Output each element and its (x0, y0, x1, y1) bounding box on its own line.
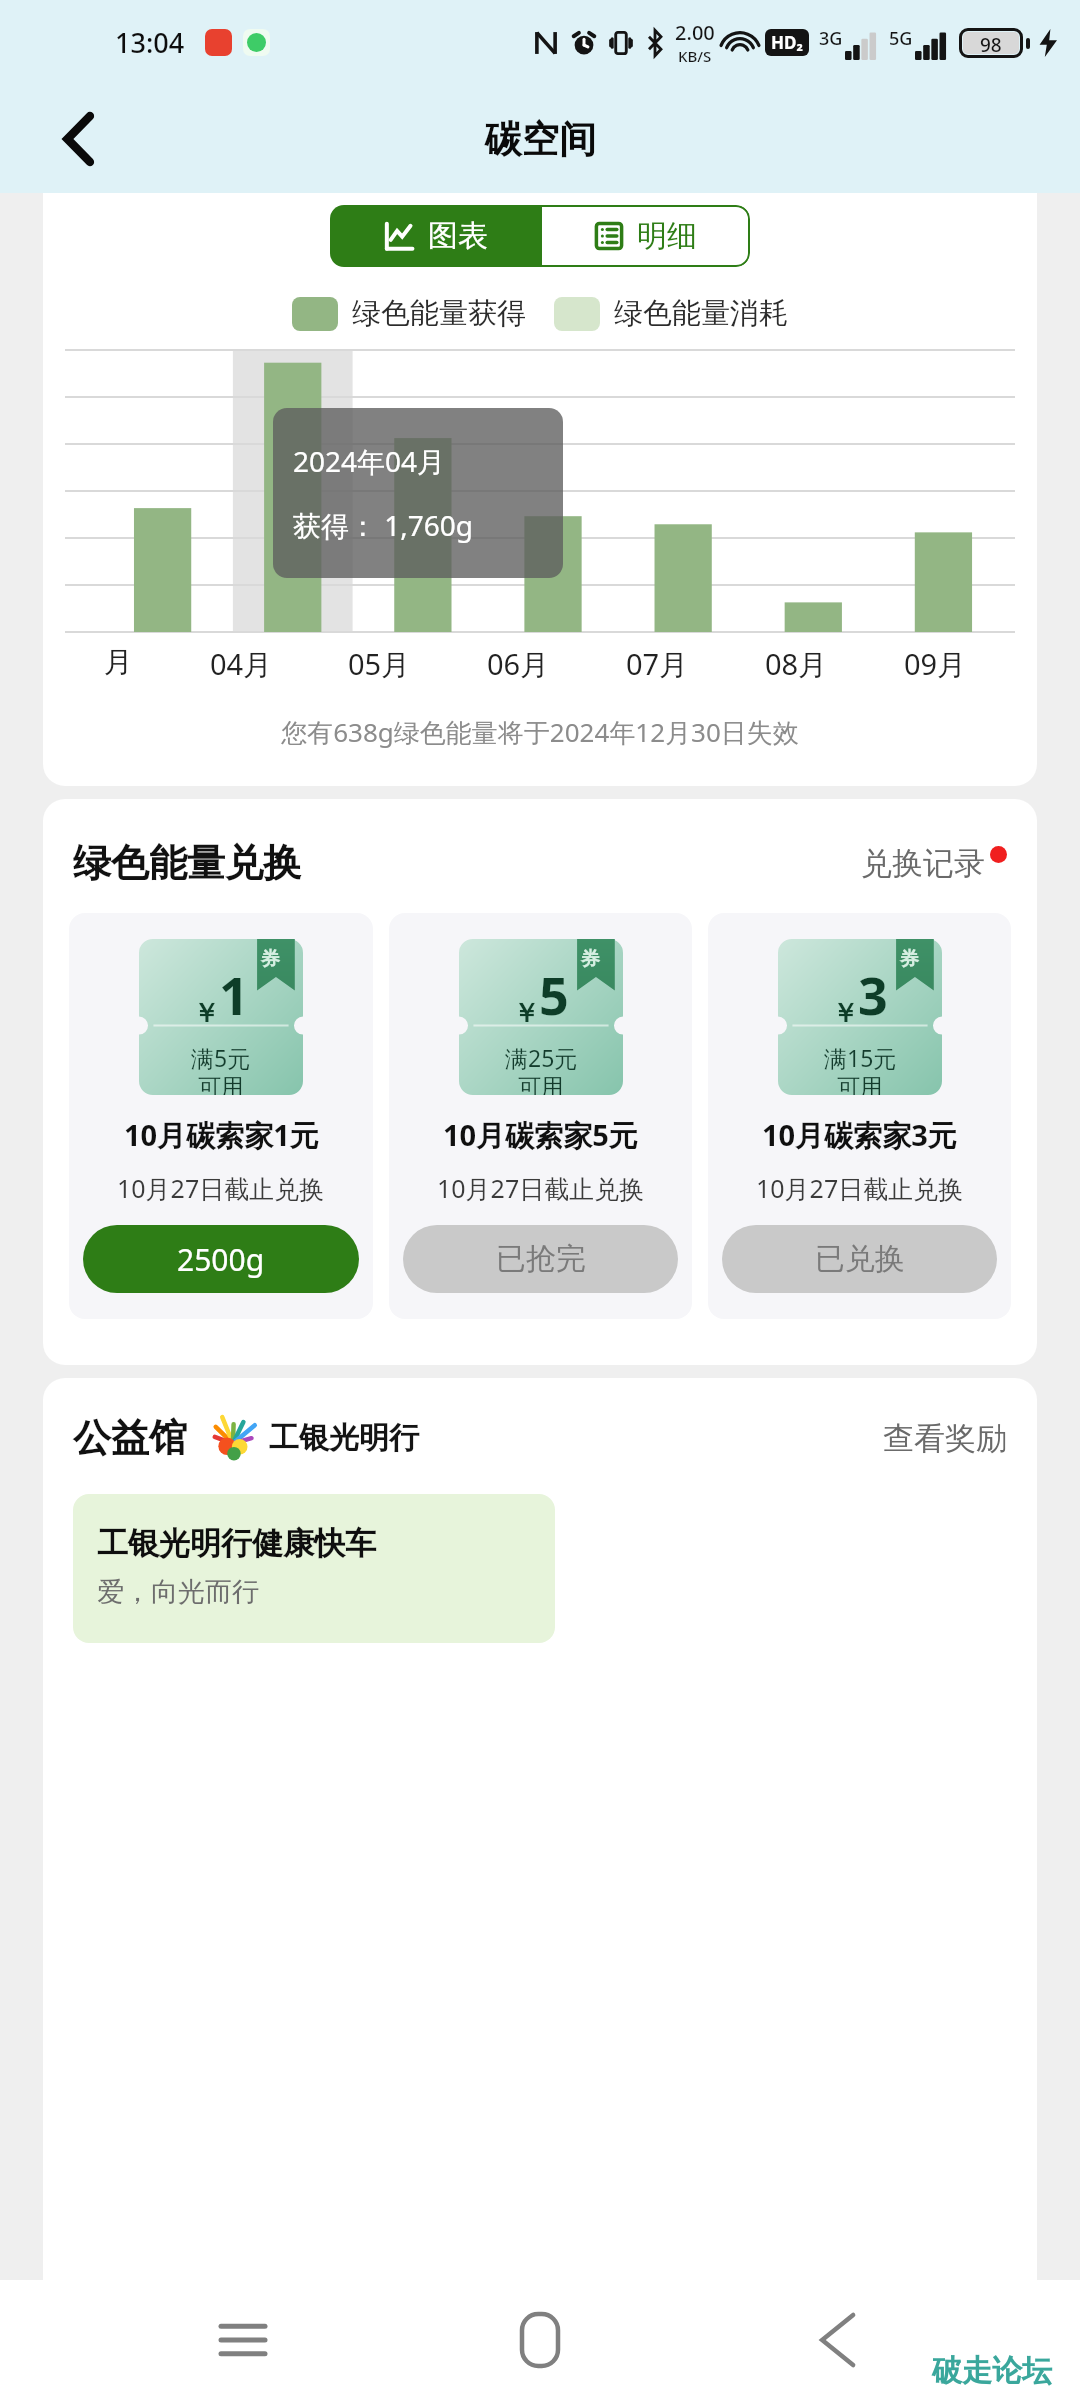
staticText: 公益馆 (73, 1414, 187, 1462)
staticText: 已兑换 (815, 1240, 905, 1278)
button[interactable]: ￥ (389, 913, 692, 1319)
staticText: 券 (900, 947, 919, 971)
staticText: 2500g (177, 1239, 265, 1280)
staticText: 10月碳索家5元 (443, 1115, 638, 1155)
staticText: 06月 (487, 644, 550, 684)
staticText: 1 (219, 959, 249, 1030)
staticText: 可用 (837, 1073, 883, 1095)
staticText: 可用 (198, 1073, 244, 1095)
button[interactable]: 返回 (783, 2285, 893, 2395)
staticText: 绿色能量获得 (352, 295, 526, 332)
staticText: 券 (581, 947, 600, 971)
button[interactable]: 主页 (485, 2285, 595, 2395)
staticText: 满15元 (824, 1042, 897, 1073)
button[interactable]: ￥ (708, 913, 1011, 1319)
staticText: ￥ (193, 997, 219, 1030)
button[interactable]: 2500g (83, 1225, 359, 1293)
staticText: 5G (889, 26, 913, 51)
staticText: 兑换记录 (861, 844, 985, 883)
staticText: 10月27日截止兑换 (756, 1171, 964, 1205)
staticText: 工银光明行 (269, 1419, 419, 1457)
staticText: 月 (104, 644, 133, 681)
staticText: 04月 (210, 644, 273, 684)
staticText: 工银光明行健康快车 (97, 1524, 376, 1563)
staticText: 2.00 (675, 19, 715, 46)
staticText: 可用 (518, 1073, 564, 1095)
staticText: KB/S (678, 46, 712, 66)
button[interactable]: 兑换记录 (861, 844, 1007, 883)
staticText: 98 (980, 32, 1002, 54)
staticText: 图表 (428, 217, 488, 255)
button[interactable]: 已抢完 (403, 1225, 678, 1293)
staticText: 券 (261, 947, 280, 971)
button[interactable]: 查看奖励 (883, 1419, 1007, 1458)
staticText: 绿色能量兑换 (73, 839, 301, 887)
staticText: 您有638g绿色能量将于2024年12月30日失效 (43, 714, 1037, 750)
staticText: 满25元 (505, 1042, 578, 1073)
button[interactable]: 工银光明行健康快车 (73, 1494, 555, 1643)
staticText: 08月 (765, 644, 828, 684)
staticText: 已抢完 (496, 1240, 586, 1278)
button[interactable]: 明细 (540, 205, 750, 267)
staticText: 爱，向光而行 (97, 1575, 259, 1609)
staticText: 3 (858, 959, 888, 1030)
button[interactable]: 最近任务 (188, 2285, 298, 2395)
staticText: 获得： 1,760g (293, 506, 474, 544)
staticText: 10月碳索家1元 (124, 1115, 319, 1155)
staticText: ￥ (513, 997, 539, 1030)
staticText: HD₂ (771, 31, 803, 54)
button[interactable]: ￥ (69, 913, 373, 1319)
staticText: 07月 (626, 644, 689, 684)
staticText: ￥ (832, 997, 858, 1030)
staticText: 05月 (348, 644, 411, 684)
staticText: 满5元 (191, 1042, 251, 1073)
button[interactable]: 已兑换 (722, 1225, 997, 1293)
staticText: 09月 (904, 644, 967, 684)
staticText: 绿色能量消耗 (614, 295, 788, 332)
staticText: 5 (539, 959, 569, 1030)
button[interactable]: 返回 (46, 106, 112, 172)
button[interactable]: 图表 (330, 205, 540, 267)
staticText: 2024年04月 (293, 442, 446, 480)
staticText: 10月碳索家3元 (762, 1115, 957, 1155)
staticText: 明细 (637, 217, 697, 255)
staticText: 13:04 (115, 24, 185, 61)
staticText: 10月27日截止兑换 (117, 1171, 325, 1205)
staticText: 碳空间 (485, 116, 596, 163)
staticText: 破走论坛 (932, 2352, 1052, 2390)
staticText: 10月27日截止兑换 (437, 1171, 645, 1205)
staticText: 3G (819, 26, 843, 51)
